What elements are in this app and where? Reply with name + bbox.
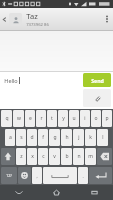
button[interactable]: z (16, 148, 26, 165)
button[interactable]: Recents (75, 185, 113, 200)
button[interactable]: h (61, 129, 72, 146)
staticText: . (82, 173, 84, 179)
button[interactable]: w (13, 110, 24, 127)
button[interactable]: l (97, 129, 108, 146)
staticText: e (29, 115, 32, 122)
button[interactable]: p (102, 110, 112, 127)
staticText: Hello (4, 77, 18, 84)
staticText: 12? (6, 173, 12, 178)
button[interactable]: Enter (89, 167, 112, 184)
button[interactable]: u (69, 110, 79, 127)
staticText: Taz (26, 11, 38, 21)
button[interactable]: f (38, 129, 48, 146)
staticText: r (40, 115, 43, 122)
button[interactable]: d (27, 129, 37, 146)
button[interactable]: . (78, 167, 88, 184)
staticText: a (9, 134, 12, 141)
button[interactable]: x (27, 148, 37, 165)
staticText: w (17, 115, 21, 122)
button[interactable]: k (85, 129, 96, 146)
button[interactable]: Send (83, 73, 111, 87)
button[interactable]: a (5, 129, 15, 146)
staticText: j (78, 134, 80, 141)
button[interactable]: q (1, 110, 12, 127)
staticText: Send (91, 77, 104, 84)
button[interactable]: i (80, 110, 90, 127)
button[interactable]: c (38, 148, 48, 165)
button[interactable]: More options (101, 8, 113, 30)
button[interactable]: Attach (83, 89, 111, 107)
button[interactable]: m (85, 148, 96, 165)
staticText: h (65, 134, 69, 141)
button[interactable]: b (61, 148, 72, 165)
staticText: c (42, 153, 45, 160)
staticText: b (65, 153, 69, 160)
button[interactable]: j (73, 129, 84, 146)
staticText: f (42, 134, 44, 141)
button[interactable] (9, 13, 22, 26)
staticText: y (62, 115, 65, 122)
staticText: l (102, 134, 104, 141)
staticText: m (88, 153, 93, 160)
button[interactable]: , (32, 167, 42, 184)
button[interactable]: Backspace (97, 148, 112, 165)
button[interactable]: Back (0, 8, 9, 30)
button[interactable]: Emoji (18, 167, 31, 184)
staticText: , (36, 173, 38, 179)
staticText: u (72, 115, 76, 122)
button[interactable]: g (49, 129, 60, 146)
staticText: p (105, 115, 109, 122)
button[interactable]: Back (0, 185, 37, 200)
button[interactable]: s (16, 129, 26, 146)
staticText: 7373962 86 (26, 22, 49, 28)
staticText: i (84, 115, 86, 122)
button[interactable]: o (91, 110, 101, 127)
button[interactable]: Shift (1, 148, 15, 165)
button[interactable]: e (25, 110, 35, 127)
button[interactable]: Hello (0, 72, 81, 109)
button[interactable]: Home (37, 185, 75, 200)
button[interactable]: t (47, 110, 57, 127)
staticText: d (30, 134, 34, 141)
staticText: x (31, 153, 34, 160)
button[interactable]: n (73, 148, 84, 165)
staticText: o (94, 115, 98, 122)
staticText: s (20, 134, 23, 141)
staticText: z (20, 153, 23, 160)
staticText: q (5, 115, 9, 122)
button[interactable]: y (58, 110, 68, 127)
button[interactable]: r (36, 110, 46, 127)
button[interactable]: 12? (1, 167, 17, 184)
staticText: v (53, 153, 56, 160)
button[interactable]: Space (43, 167, 77, 184)
staticText: n (77, 153, 81, 160)
staticText: k (89, 134, 92, 141)
staticText: t (51, 115, 53, 122)
staticText: g (53, 134, 57, 141)
button[interactable]: v (49, 148, 60, 165)
